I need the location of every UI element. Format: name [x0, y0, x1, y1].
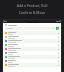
button[interactable] [5, 27, 55, 30]
button[interactable] [5, 24, 59, 26]
button[interactable] [3, 31, 61, 35]
button[interactable] [3, 35, 61, 39]
button[interactable] [3, 39, 61, 43]
button[interactable] [3, 63, 61, 67]
staticText: Confirm & Move [5, 10, 59, 15]
button[interactable] [3, 55, 61, 59]
staticText: Add a Product, Roll [5, 3, 59, 8]
button[interactable] [3, 51, 61, 55]
button[interactable] [3, 43, 61, 47]
button[interactable]: Add product [56, 27, 59, 30]
button[interactable] [3, 59, 61, 63]
button[interactable] [3, 47, 61, 51]
